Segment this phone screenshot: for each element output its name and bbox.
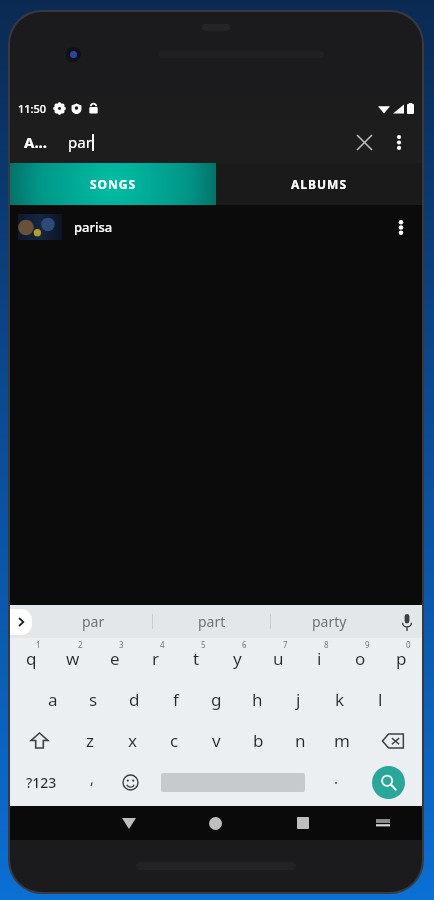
staticText: z (86, 729, 94, 752)
button[interactable]: ALBUMS (216, 163, 422, 205)
staticText: x (128, 729, 137, 752)
button[interactable]: r (135, 638, 176, 679)
staticText: b (253, 729, 264, 752)
staticText: m (334, 729, 350, 752)
button[interactable]: o (340, 638, 381, 679)
staticText: u (273, 647, 284, 670)
staticText: a (48, 688, 58, 711)
button[interactable]: Song options (384, 210, 418, 244)
staticText: 3 (119, 639, 124, 650)
staticText: par (82, 612, 105, 631)
staticText: e (110, 647, 120, 670)
button[interactable]: m (321, 720, 363, 761)
button[interactable]: Search (355, 761, 422, 803)
staticText: 2 (78, 639, 83, 650)
staticText: A... (24, 132, 48, 152)
button[interactable]: h (237, 679, 278, 720)
button[interactable]: a (32, 679, 73, 720)
button[interactable]: par (34, 605, 152, 638)
staticText: 0 (406, 639, 411, 650)
button[interactable]: w (52, 638, 94, 679)
staticText: t (193, 647, 200, 670)
button[interactable]: n (279, 720, 321, 761)
staticText: v (212, 729, 221, 752)
button[interactable]: Clear (346, 124, 382, 160)
staticText: r (152, 647, 160, 670)
button[interactable]: parisa (10, 205, 422, 249)
staticText: w (66, 647, 80, 670)
button[interactable]: c (153, 720, 195, 761)
staticText: party (312, 612, 347, 631)
staticText: d (129, 688, 140, 711)
button[interactable]: g (196, 679, 237, 720)
staticText: par (68, 132, 92, 152)
button[interactable]: Shift (10, 720, 69, 761)
staticText: 8 (324, 639, 329, 650)
button[interactable]: u (258, 638, 299, 679)
staticText: , (90, 768, 95, 788)
staticText: h (252, 688, 263, 711)
button[interactable]: Voice input (392, 607, 422, 637)
staticText: 4 (160, 639, 165, 650)
staticText: ?123 (26, 773, 57, 792)
button[interactable]: y (217, 638, 258, 679)
button[interactable]: ?123 (10, 761, 73, 803)
button[interactable]: f (155, 679, 196, 720)
staticText: s (89, 688, 98, 711)
staticText: y (233, 647, 242, 670)
staticText: 5 (201, 639, 206, 650)
button[interactable]: Space (149, 761, 317, 803)
button[interactable]: i (299, 638, 340, 679)
button[interactable]: j (278, 679, 319, 720)
staticText: 9 (365, 639, 370, 650)
button[interactable]: v (195, 720, 237, 761)
button[interactable]: b (237, 720, 279, 761)
staticText: g (211, 688, 222, 711)
staticText: parisa (74, 218, 113, 236)
staticText: SONGS (90, 176, 137, 192)
button[interactable]: Switch keyboard (346, 806, 420, 840)
button[interactable]: part (153, 605, 270, 638)
button[interactable]: s (73, 679, 114, 720)
button[interactable]: d (114, 679, 155, 720)
button[interactable]: q (10, 638, 52, 679)
button[interactable]: x (111, 720, 153, 761)
staticText: n (295, 729, 306, 752)
button[interactable]: Recents (259, 806, 346, 840)
button[interactable]: p (381, 638, 422, 679)
button[interactable]: , (73, 761, 111, 803)
button[interactable]: Backspace (363, 720, 422, 761)
button[interactable]: SONGS (10, 163, 216, 205)
button[interactable]: party (271, 605, 388, 638)
staticText: j (296, 688, 301, 711)
staticText: k (335, 688, 345, 711)
button[interactable]: Emoji (111, 761, 149, 803)
staticText: o (355, 647, 366, 670)
staticText: 6 (242, 639, 247, 650)
staticText: ALBUMS (291, 176, 347, 192)
staticText: f (173, 688, 179, 711)
staticText: 11:50 (18, 101, 47, 116)
staticText: . (334, 768, 339, 788)
button[interactable]: t (176, 638, 217, 679)
staticText: part (198, 612, 226, 631)
button[interactable]: k (319, 679, 360, 720)
button[interactable]: Hide keyboard (85, 806, 172, 840)
button[interactable]: More options (382, 125, 416, 159)
staticText: i (317, 647, 322, 670)
staticText: c (170, 729, 179, 752)
button[interactable]: l (360, 679, 401, 720)
staticText: 7 (283, 639, 288, 650)
button[interactable]: Expand suggestions (10, 609, 32, 635)
button[interactable]: Home (172, 806, 259, 840)
button[interactable]: z (69, 720, 111, 761)
button[interactable]: . (317, 761, 355, 803)
button[interactable]: e (94, 638, 135, 679)
staticText: l (378, 688, 383, 711)
staticText: p (396, 647, 407, 670)
staticText: q (26, 647, 37, 670)
staticText: 1 (36, 639, 41, 650)
